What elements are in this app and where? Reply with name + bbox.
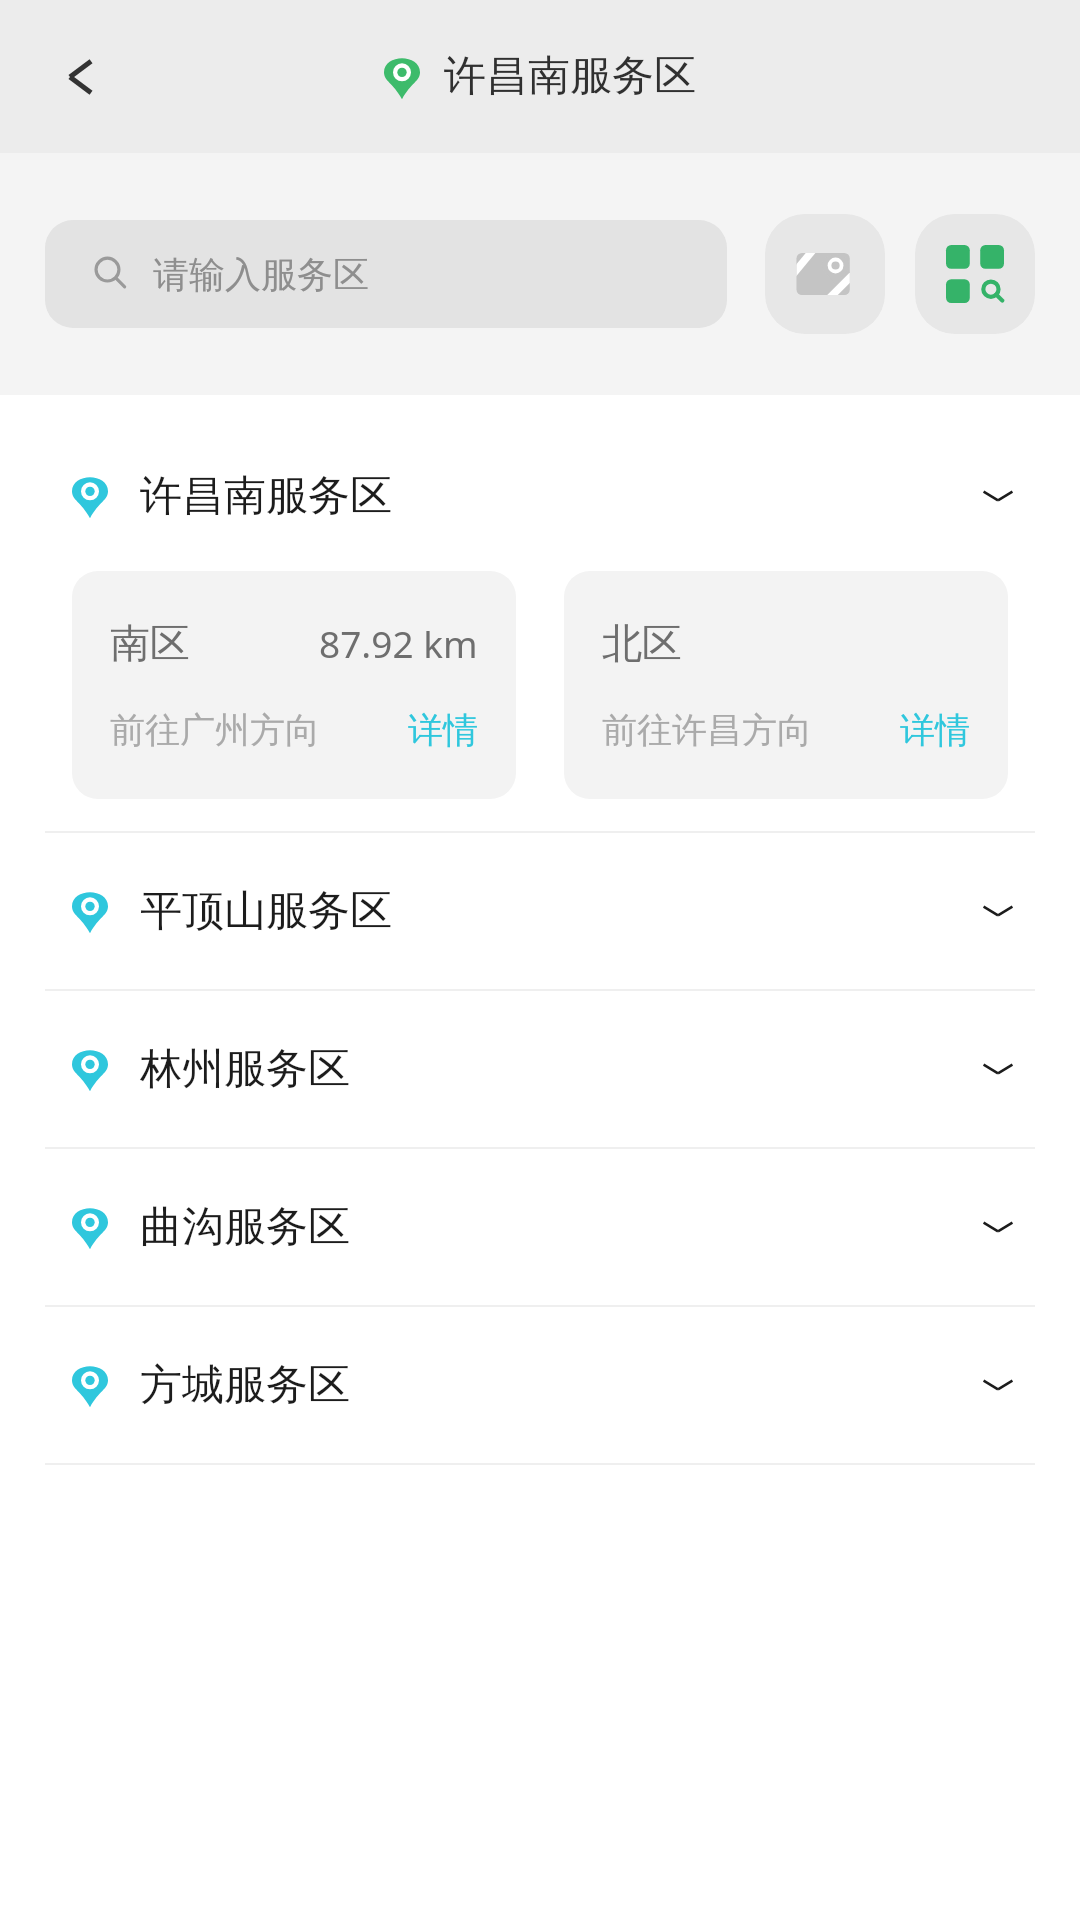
- staticText: 方城服务区: [140, 1359, 350, 1412]
- button[interactable]: 平顶山服务区: [0, 836, 1080, 986]
- staticText: 87.92 km: [319, 618, 478, 668]
- button[interactable]: Browse all service areas: [915, 214, 1035, 334]
- staticText: 南区: [110, 618, 190, 668]
- button[interactable]: Map view: [765, 214, 885, 334]
- staticText: 林州服务区: [140, 1043, 350, 1096]
- button[interactable]: 北区: [564, 571, 1008, 799]
- button[interactable]: 详情: [408, 708, 478, 752]
- staticText: 前往广州方向: [110, 708, 320, 752]
- button[interactable]: 请输入服务区: [45, 220, 727, 328]
- button[interactable]: 方城服务区: [0, 1310, 1080, 1460]
- button[interactable]: 详情: [900, 708, 970, 752]
- staticText: 许昌南服务区: [444, 50, 696, 103]
- staticText: 请输入服务区: [153, 252, 369, 297]
- staticText: 北区: [602, 618, 682, 668]
- staticText: 许昌南服务区: [140, 470, 392, 523]
- button[interactable]: 许昌南服务区: [0, 421, 1080, 571]
- staticText: 平顶山服务区: [140, 885, 392, 938]
- button[interactable]: Back: [32, 30, 126, 124]
- button[interactable]: 曲沟服务区: [0, 1152, 1080, 1302]
- button[interactable]: 南区: [72, 571, 516, 799]
- staticText: 前往许昌方向: [602, 708, 812, 752]
- button[interactable]: 林州服务区: [0, 994, 1080, 1144]
- staticText: 曲沟服务区: [140, 1201, 350, 1254]
